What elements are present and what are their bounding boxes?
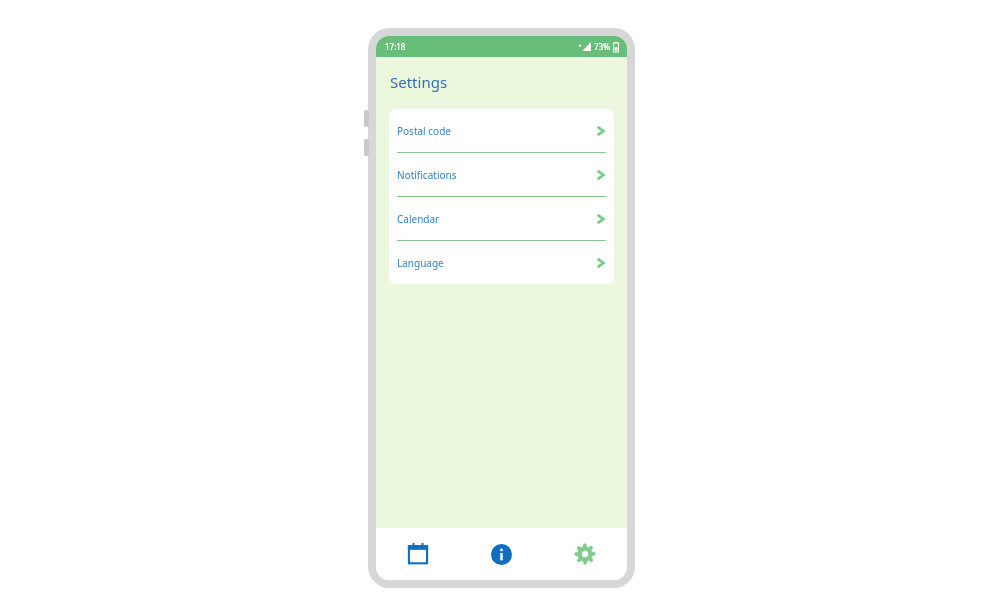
button[interactable]: Postal code bbox=[389, 109, 614, 152]
staticText: Language bbox=[397, 256, 595, 270]
button[interactable]: Language bbox=[389, 241, 614, 284]
button[interactable]: Calendar bbox=[389, 197, 614, 240]
staticText: Notifications bbox=[397, 168, 595, 182]
staticText: Postal code bbox=[397, 124, 595, 138]
staticText: 73% bbox=[594, 41, 610, 52]
button[interactable]: Info bbox=[459, 528, 543, 580]
button[interactable]: Calendar bbox=[376, 528, 459, 580]
button[interactable]: Settings bbox=[543, 528, 627, 580]
staticText: Settings bbox=[390, 72, 448, 92]
button[interactable]: Notifications bbox=[389, 153, 614, 196]
staticText: 17:18 bbox=[385, 41, 406, 52]
staticText: Calendar bbox=[397, 212, 595, 226]
